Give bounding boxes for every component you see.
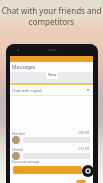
button[interactable]: Google Play (82, 165, 94, 177)
staticText: Chat with rupali (12, 88, 42, 93)
button[interactable]: Shefali (10, 147, 93, 161)
button[interactable]: Reply (13, 166, 82, 174)
staticText: Nandini (12, 131, 25, 136)
button[interactable]: New (46, 70, 58, 79)
button[interactable]: Nandini (10, 131, 93, 145)
staticText: Chat with your friends and competitors (0, 5, 103, 27)
staticText: Messages (12, 64, 36, 71)
staticText: Reply (15, 168, 24, 173)
staticText: Shefali (12, 147, 24, 152)
staticText: 2:14 PM (78, 147, 90, 151)
button[interactable]: Chat with rupali (10, 85, 93, 95)
button[interactable]: Messages (10, 62, 93, 72)
staticText: Got a new message (12, 160, 40, 164)
staticText: New (48, 72, 57, 77)
staticText: 2:08 PM (78, 131, 90, 135)
